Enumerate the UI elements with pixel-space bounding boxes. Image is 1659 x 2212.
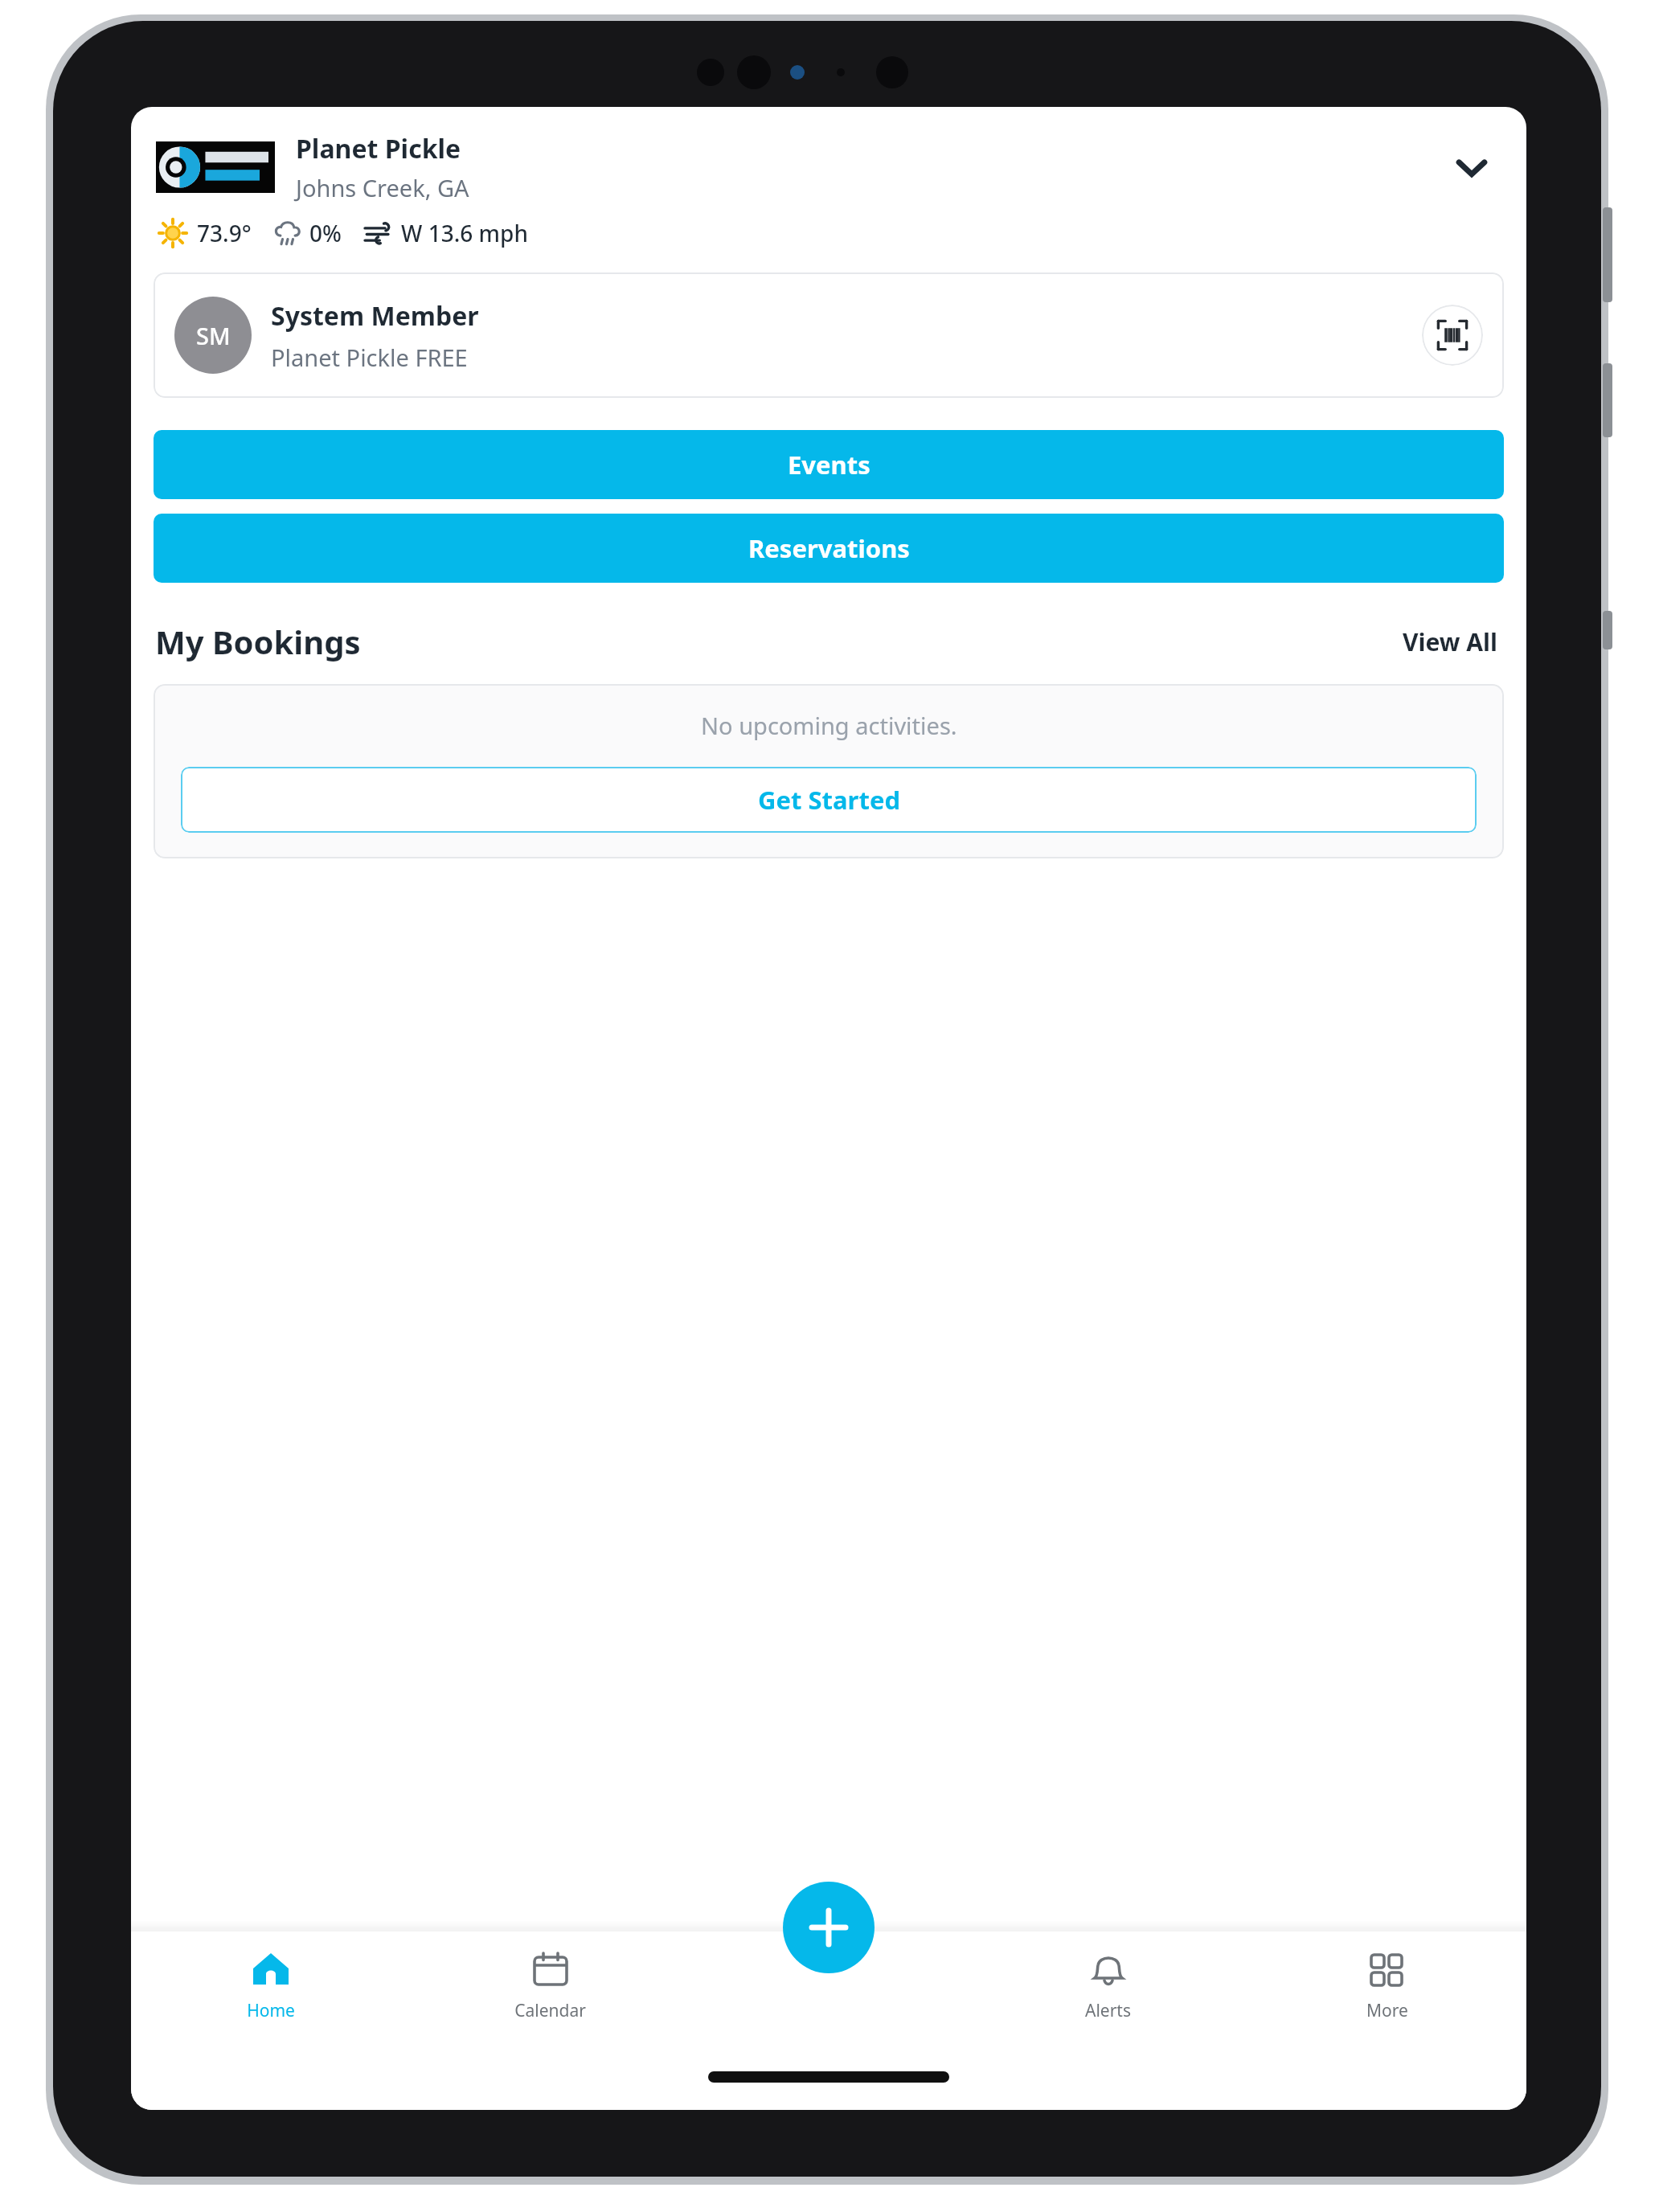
staticText: Home bbox=[247, 1999, 295, 2022]
button[interactable]: Reservations bbox=[154, 514, 1504, 583]
staticText: Alerts bbox=[1085, 1999, 1131, 2022]
button[interactable]: Planet Pickle bbox=[131, 125, 1526, 207]
staticText: Get Started bbox=[758, 783, 900, 817]
button[interactable]: Events bbox=[154, 430, 1504, 499]
button[interactable]: View All bbox=[1398, 621, 1502, 663]
staticText: Planet Pickle bbox=[296, 131, 461, 166]
staticText: Reservations bbox=[748, 531, 910, 565]
staticText: Johns Creek, GA bbox=[296, 172, 469, 203]
button[interactable]: Get Started bbox=[181, 767, 1477, 833]
button[interactable]: Calendar bbox=[411, 1944, 690, 2027]
staticText: Events bbox=[788, 448, 870, 481]
staticText: 73.9° bbox=[197, 218, 252, 248]
button[interactable]: Create new bbox=[783, 1882, 875, 1973]
staticText: Planet Pickle FREE bbox=[271, 342, 468, 373]
staticText: SM bbox=[196, 320, 231, 351]
staticText: No upcoming activities. bbox=[701, 710, 957, 741]
button[interactable]: Expand venue selector bbox=[1440, 135, 1504, 199]
button[interactable]: Scan membership barcode bbox=[1422, 305, 1483, 366]
staticText: 0% bbox=[309, 218, 342, 248]
button[interactable]: SM bbox=[154, 272, 1504, 398]
staticText: More bbox=[1366, 1999, 1408, 2022]
button[interactable]: More bbox=[1247, 1944, 1526, 2027]
staticText: System Member bbox=[271, 298, 479, 334]
button[interactable]: Alerts bbox=[969, 1944, 1247, 2027]
staticText: View All bbox=[1403, 625, 1497, 658]
staticText: W 13.6 mph bbox=[401, 218, 529, 248]
staticText: Calendar bbox=[514, 1999, 586, 2022]
staticText: My Bookings bbox=[155, 620, 361, 663]
button[interactable]: Home bbox=[131, 1944, 411, 2027]
